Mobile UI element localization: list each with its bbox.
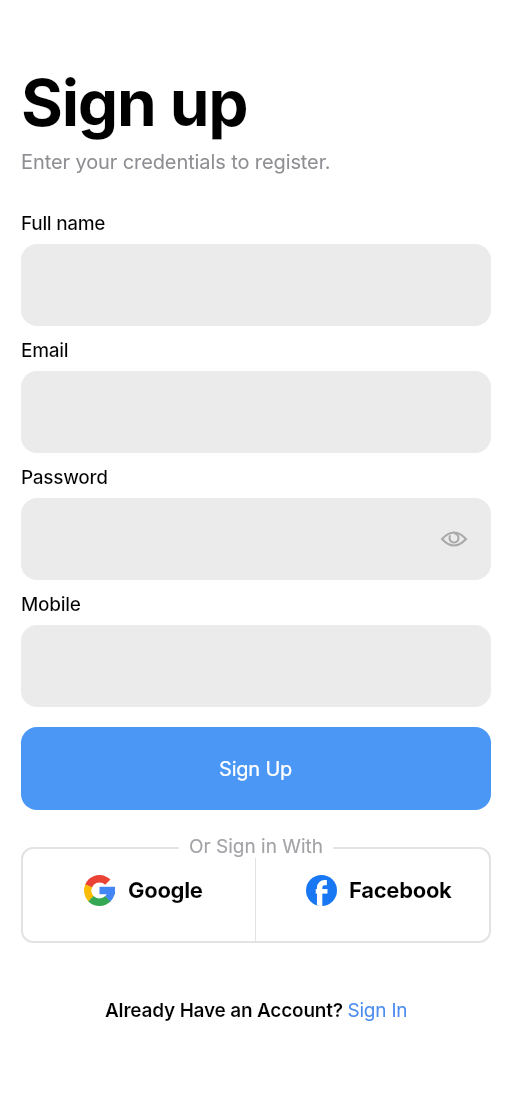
staticText: Email — [21, 339, 69, 362]
staticText: Full name — [21, 212, 106, 235]
staticText: Mobile — [21, 593, 81, 616]
staticText: Google — [128, 877, 203, 904]
staticText: Sign up — [21, 64, 248, 141]
staticText: Sign Up — [219, 757, 293, 781]
staticText: Already Have an Account? Sign In — [105, 999, 408, 1022]
staticText: Facebook — [349, 877, 452, 904]
staticText: Password — [21, 466, 108, 489]
staticText: Or Sign in With — [189, 835, 323, 858]
staticText: Enter your credentials to register. — [21, 150, 331, 174]
